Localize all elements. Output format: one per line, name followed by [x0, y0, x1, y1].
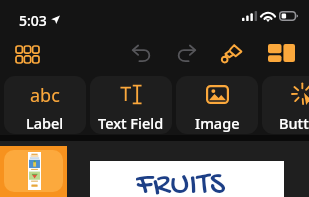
- staticText: abc: [30, 83, 60, 108]
- button[interactable]: Layout: [266, 38, 296, 68]
- button[interactable]: Theme: [216, 38, 246, 68]
- staticText: Button: [279, 113, 309, 133]
- staticText: Image: [195, 113, 240, 133]
- staticText: Label: [26, 113, 64, 133]
- staticText: FRUITS: [136, 167, 226, 197]
- button[interactable]: Button: [262, 76, 309, 134]
- button[interactable]: Image: [176, 76, 258, 134]
- button[interactable]: Widgets: [12, 39, 42, 69]
- button[interactable]: Undo: [126, 38, 156, 68]
- button[interactable]: abc: [4, 76, 86, 134]
- button[interactable]: Redo: [171, 38, 201, 68]
- staticText: Text Field: [98, 113, 164, 133]
- button[interactable]: [4, 150, 63, 192]
- button[interactable]: Text Field: [90, 76, 172, 134]
- staticText: 5:03: [19, 11, 47, 30]
